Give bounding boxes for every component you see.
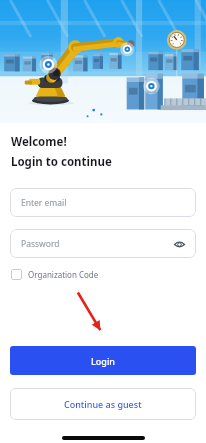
button[interactable]: Login — [10, 346, 196, 375]
button[interactable]: Password — [10, 229, 196, 258]
staticText: Continue as guest — [64, 398, 142, 410]
staticText: Organization Code — [28, 269, 99, 280]
staticText: Login to continue — [11, 154, 112, 170]
staticText: Login — [91, 355, 115, 367]
button[interactable]: Enter email — [10, 188, 196, 217]
staticText: Enter email — [21, 197, 67, 209]
staticText: Password — [21, 238, 60, 250]
staticText: Welcome! — [11, 134, 67, 150]
button[interactable]: Continue as guest — [10, 388, 196, 420]
button[interactable]: Organization Code — [11, 269, 99, 280]
button[interactable]: Show password — [170, 235, 188, 253]
